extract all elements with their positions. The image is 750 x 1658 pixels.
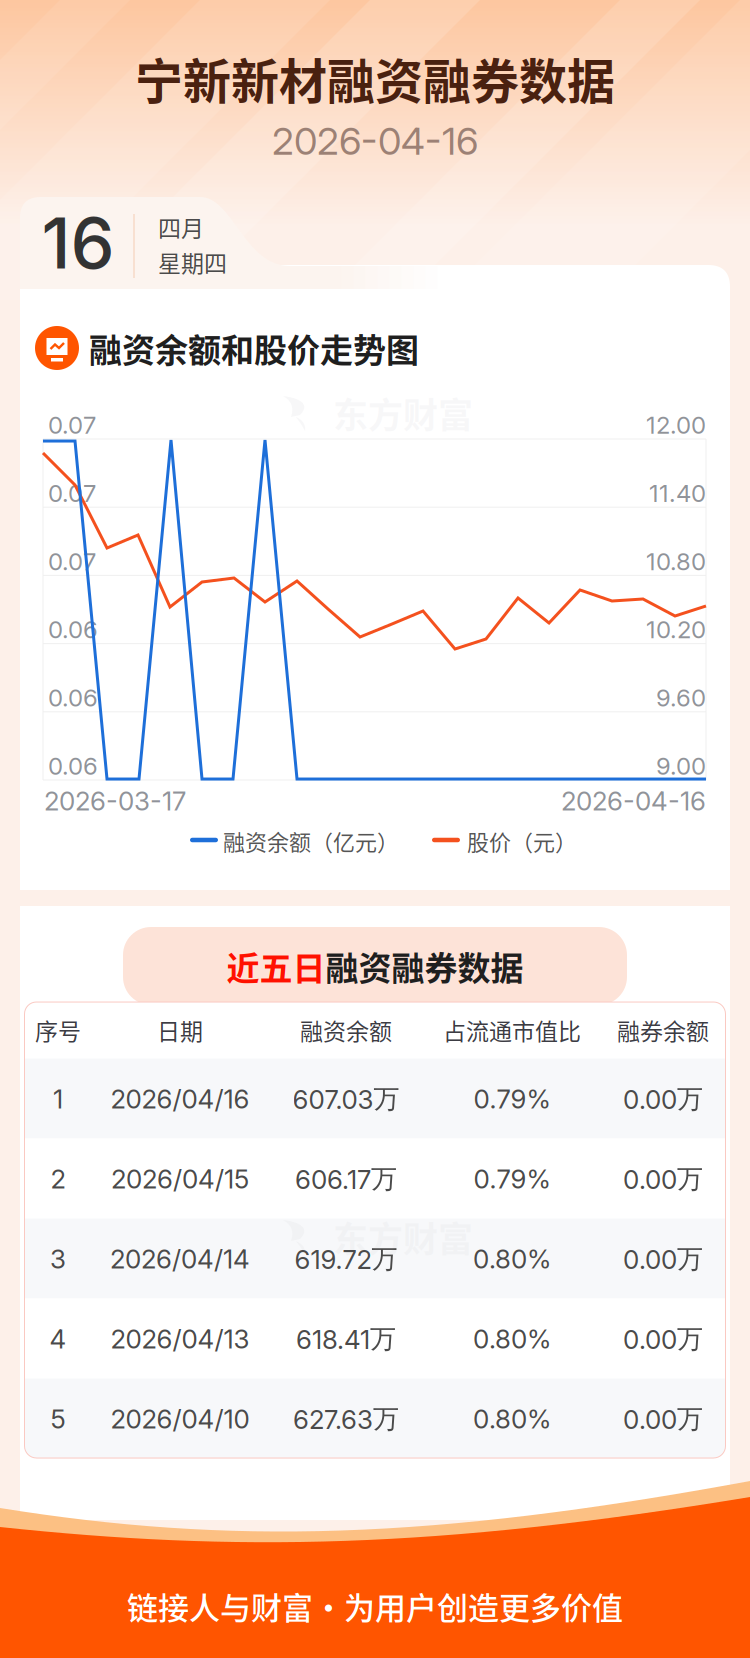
staticText: 0.00万 [623, 1323, 703, 1355]
staticText: 0.00万 [623, 1403, 703, 1435]
staticText: 链接人与财富·为用户创造更多价值 [127, 1584, 623, 1628]
staticText: 3 [50, 1243, 66, 1275]
staticText: 16 [41, 201, 114, 285]
staticText: 4 [49, 1323, 66, 1355]
staticText: 0.80% [473, 1323, 551, 1355]
staticText: 东方财富 [333, 1212, 473, 1262]
staticText: 四月 [158, 210, 204, 244]
staticText: 607.03万 [292, 1083, 399, 1115]
staticText: 10.80 [646, 547, 706, 576]
staticText: 618.41万 [296, 1323, 396, 1355]
staticText: 0.00万 [623, 1163, 703, 1195]
staticText: 日期 [157, 1013, 203, 1047]
staticText: 619.72万 [294, 1243, 397, 1275]
staticText: 5 [50, 1403, 65, 1435]
staticText: 近五日 [226, 942, 325, 990]
staticText: 融资余额 [300, 1013, 392, 1047]
staticText: 12.00 [646, 410, 706, 439]
staticText: 2026/04/16 [110, 1083, 249, 1115]
staticText: 股价（元） [467, 825, 577, 857]
staticText: 融券余额 [617, 1013, 709, 1047]
staticText: 2026-04-16 [272, 118, 478, 164]
staticText: 0.06 [48, 683, 98, 712]
staticText: 9.60 [656, 683, 706, 712]
staticText: 606.17万 [295, 1163, 397, 1195]
staticText: 2 [50, 1163, 65, 1195]
staticText: 0.80% [473, 1403, 551, 1435]
staticText: 融资融券数据 [325, 942, 523, 990]
staticText: 9.00 [656, 751, 706, 780]
staticText: 星期四 [158, 245, 227, 279]
staticText: 东方财富 [333, 388, 473, 438]
staticText: 11.40 [649, 479, 706, 508]
staticText: 2026/04/10 [110, 1403, 249, 1435]
staticText: 0.00万 [623, 1243, 703, 1275]
staticText: 0.07 [48, 410, 96, 439]
staticText: 2026-04-16 [561, 785, 706, 817]
staticText: 融资余额和股价走势图 [89, 324, 419, 372]
staticText: 10.20 [646, 615, 706, 644]
staticText: 0.06 [48, 615, 98, 644]
staticText: 0.07 [48, 547, 96, 576]
staticText: 1 [53, 1083, 63, 1115]
staticText: 0.07 [48, 479, 96, 508]
staticText: 宁新新材融资融券数据 [135, 43, 615, 113]
staticText: 627.63万 [293, 1403, 399, 1435]
staticText: 0.80% [473, 1243, 551, 1275]
staticText: 0.79% [473, 1163, 550, 1195]
staticText: 融资余额（亿元） [223, 825, 399, 857]
staticText: 2026/04/14 [110, 1243, 250, 1275]
staticText: 2026/04/15 [111, 1163, 249, 1195]
staticText: 0.79% [473, 1083, 550, 1115]
staticText: 2026/04/13 [110, 1323, 249, 1355]
staticText: 占流通市值比 [443, 1013, 581, 1047]
staticText: 序号 [35, 1013, 81, 1047]
staticText: 0.00万 [623, 1083, 703, 1115]
staticText: 0.06 [48, 751, 98, 780]
staticText: 2026-03-17 [44, 785, 186, 817]
